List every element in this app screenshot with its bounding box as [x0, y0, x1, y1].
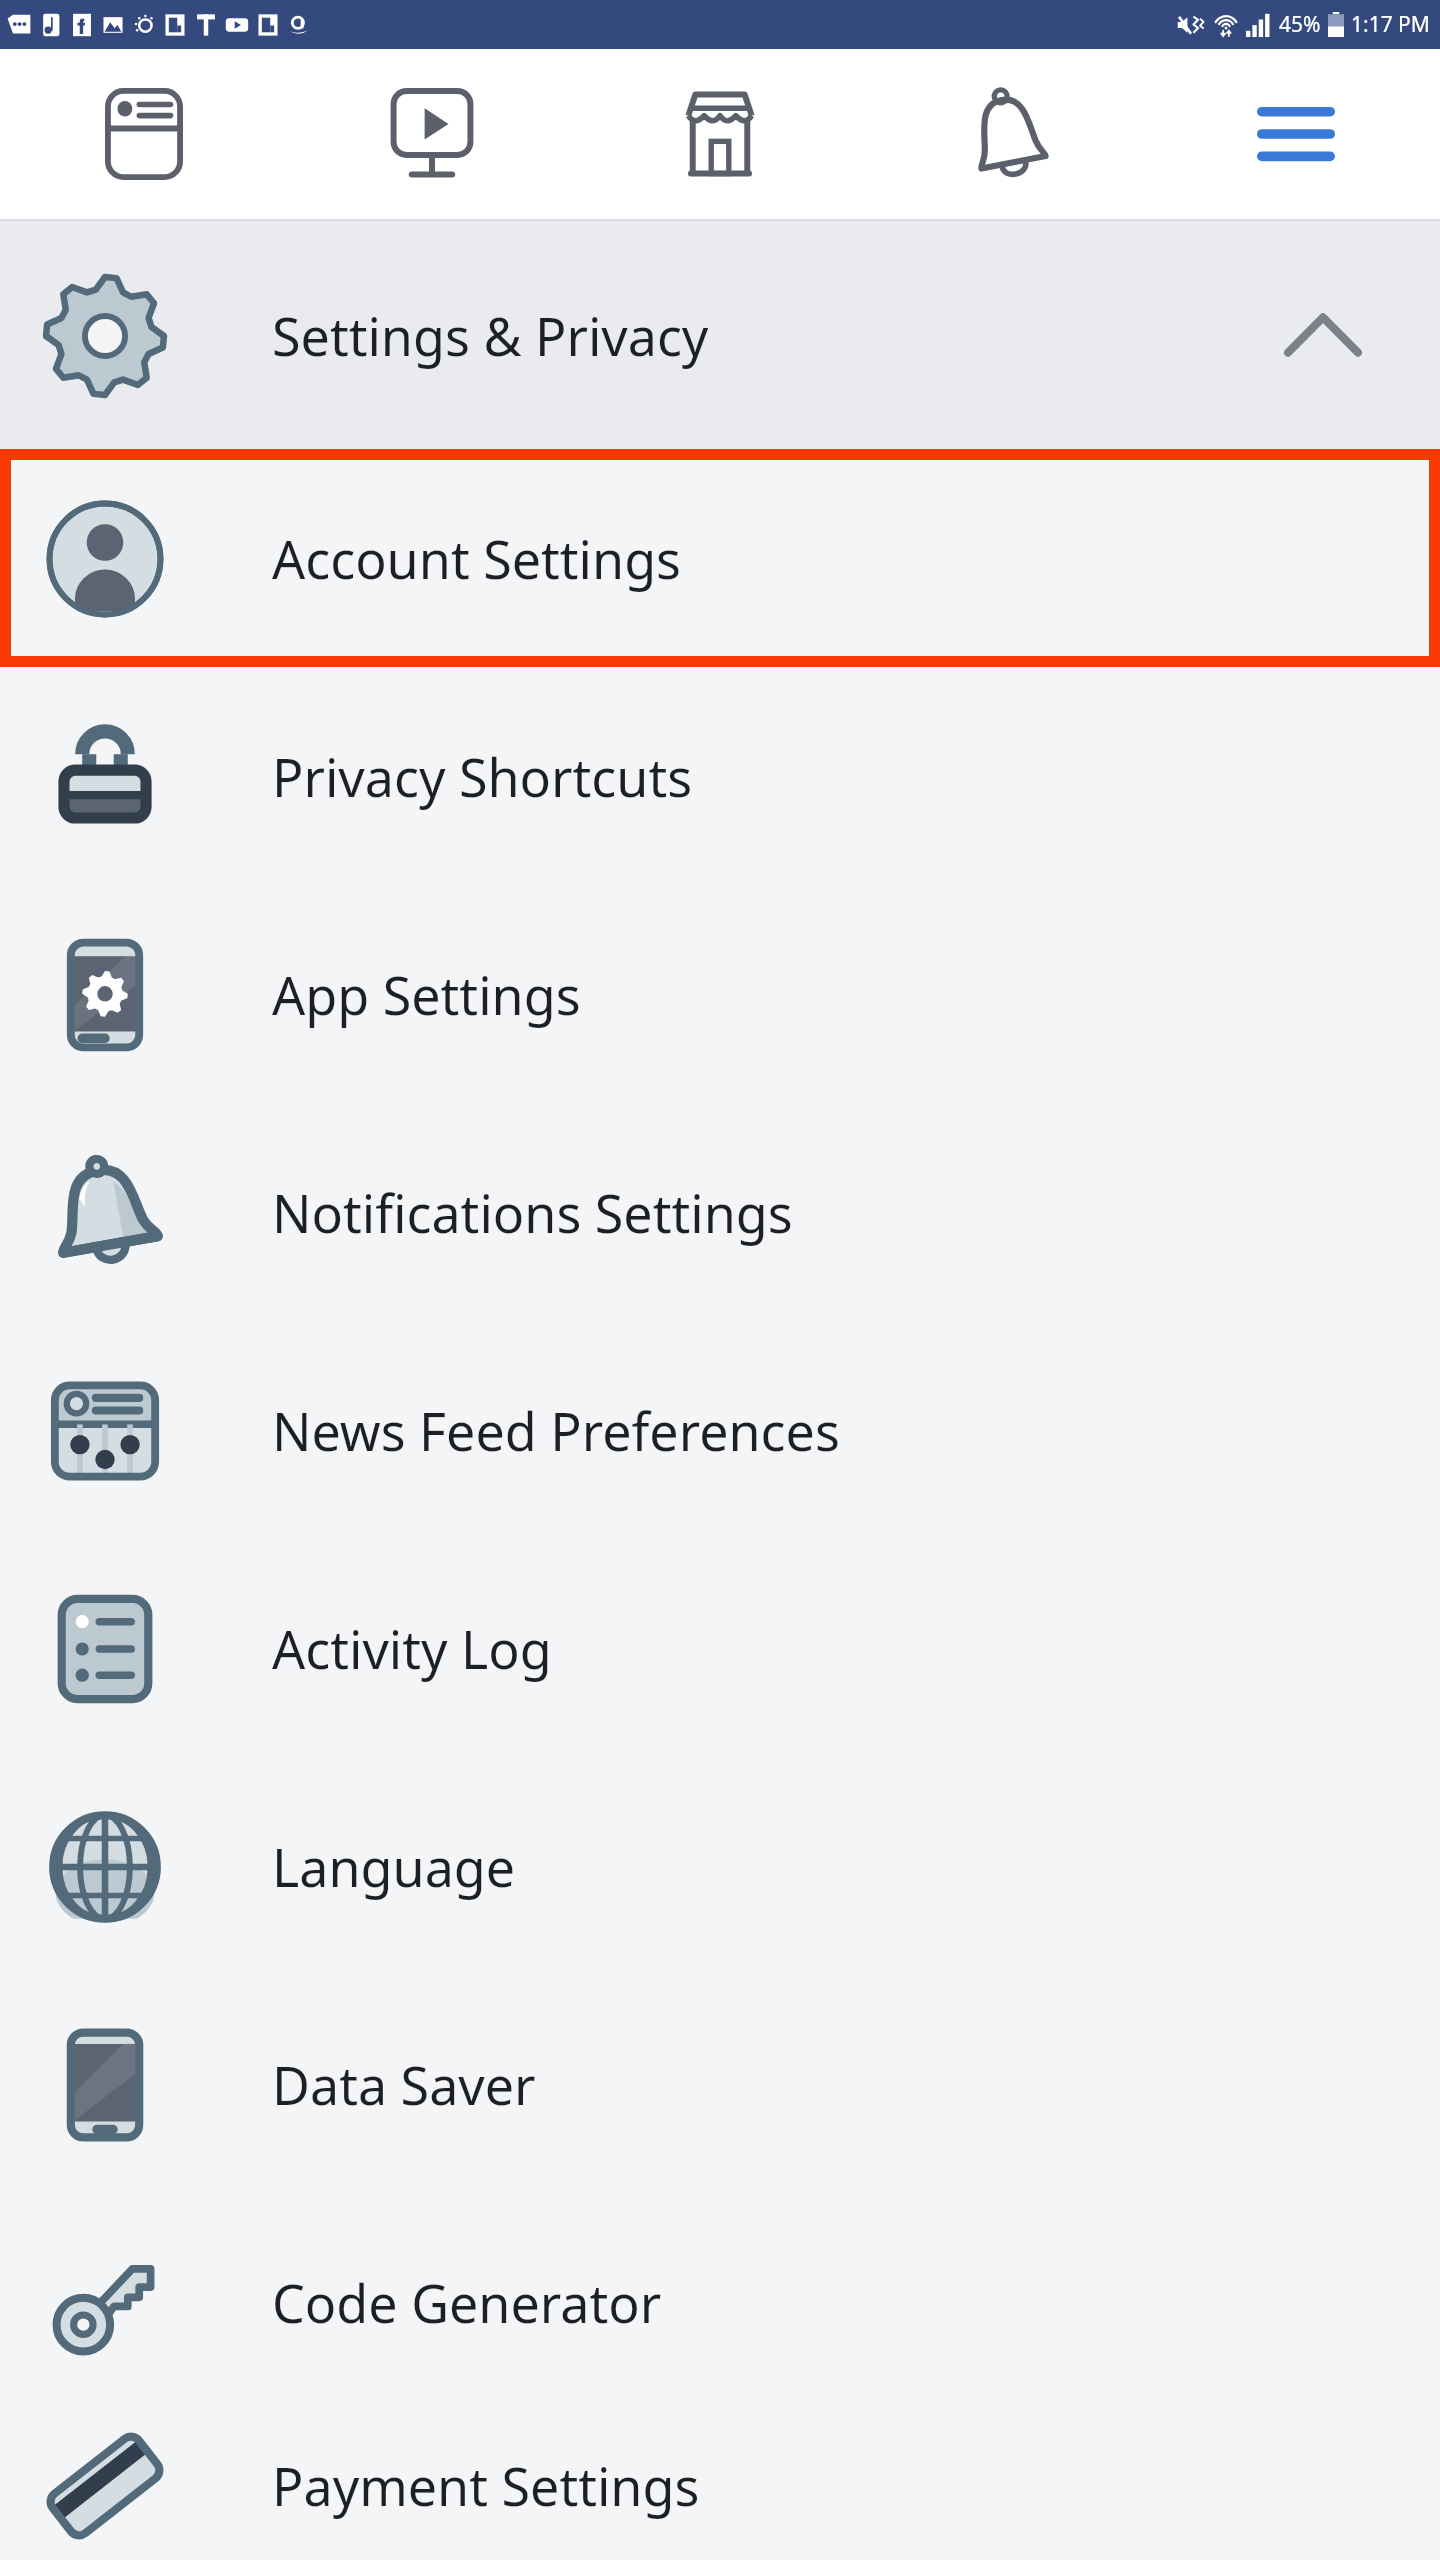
- button[interactable]: Language: [0, 1757, 1440, 1975]
- staticText: Notifications Settings: [272, 1177, 793, 1248]
- staticText: Data Saver: [272, 2049, 536, 2120]
- button[interactable]: Account Settings: [0, 449, 1440, 667]
- button[interactable]: Payment Settings: [0, 2411, 1440, 2560]
- button[interactable]: Activity Log: [0, 1539, 1440, 1757]
- staticText: Settings & Privacy: [272, 300, 709, 371]
- button[interactable]: News Feed: [0, 49, 288, 219]
- staticText: App Settings: [272, 959, 581, 1030]
- staticText: 1:17 PM: [1351, 10, 1430, 39]
- button[interactable]: Notifications: [864, 49, 1152, 219]
- button[interactable]: Privacy Shortcuts: [0, 667, 1440, 885]
- button[interactable]: Menu: [1152, 49, 1440, 219]
- button[interactable]: Notifications Settings: [0, 1103, 1440, 1321]
- button[interactable]: Code Generator: [0, 2193, 1440, 2411]
- staticText: 45%: [1279, 10, 1321, 39]
- button[interactable]: News Feed Preferences: [0, 1321, 1440, 1539]
- staticText: Activity Log: [272, 1613, 552, 1684]
- staticText: Code Generator: [272, 2267, 662, 2338]
- button[interactable]: Watch: [288, 49, 576, 219]
- button[interactable]: Marketplace: [576, 49, 864, 219]
- staticText: Account Settings: [272, 523, 682, 594]
- button[interactable]: Data Saver: [0, 1975, 1440, 2193]
- staticText: Privacy Shortcuts: [272, 741, 693, 812]
- staticText: News Feed Preferences: [272, 1395, 840, 1466]
- button[interactable]: Settings & Privacy: [0, 221, 1440, 449]
- staticText: Language: [272, 1831, 516, 1902]
- button[interactable]: App Settings: [0, 885, 1440, 1103]
- staticText: Payment Settings: [272, 2450, 700, 2521]
